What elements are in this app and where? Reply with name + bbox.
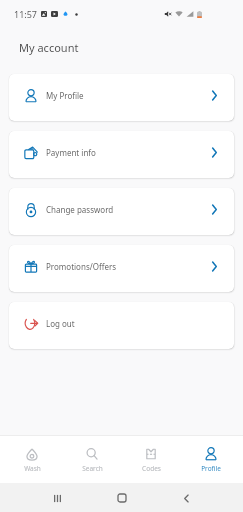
staticText: Change password	[46, 204, 114, 215]
button[interactable]: Payment info	[9, 131, 234, 178]
button[interactable]: Profile	[183, 447, 239, 473]
button[interactable]: Log out	[9, 302, 234, 349]
staticText: My account	[19, 40, 79, 55]
button[interactable]: Codes	[123, 447, 179, 473]
staticText: Promotions/Offers	[46, 261, 117, 272]
staticText: My Profile	[46, 90, 84, 101]
button[interactable]: Search	[64, 447, 120, 473]
staticText: Search	[82, 464, 103, 473]
button[interactable]: Recent apps	[49, 490, 65, 506]
staticText: Profile	[201, 464, 221, 473]
button[interactable]: Wash	[4, 447, 60, 473]
button[interactable]: Home	[114, 490, 130, 506]
staticText: Log out	[46, 318, 75, 329]
staticText: Payment info	[46, 147, 96, 158]
staticText: Wash	[24, 464, 41, 473]
staticText: 11:57	[14, 8, 38, 20]
button[interactable]: Change password	[9, 188, 234, 235]
button[interactable]: My Profile	[9, 74, 234, 121]
staticText: Codes	[142, 464, 161, 473]
button[interactable]: Promotions/Offers	[9, 245, 234, 292]
button[interactable]: Back	[178, 490, 194, 506]
